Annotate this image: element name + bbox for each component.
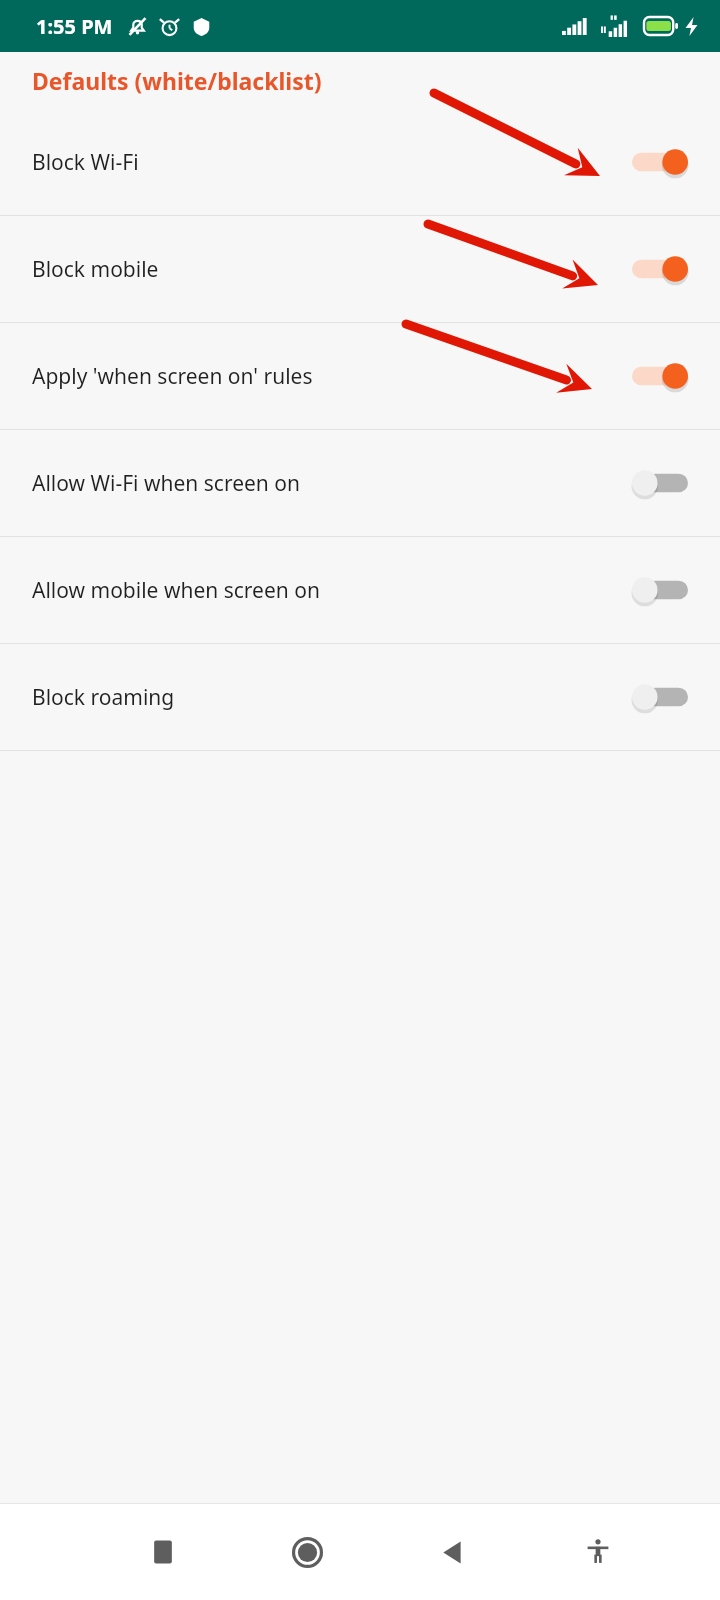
staticText: Block mobile (32, 255, 632, 284)
staticText: Block roaming (32, 683, 632, 712)
staticText: Allow mobile when screen on (32, 576, 632, 605)
button[interactable]: Allow mobile when screen on (0, 537, 720, 643)
button[interactable]: Back (380, 1504, 525, 1600)
button[interactable]: Recent apps (90, 1504, 235, 1600)
button[interactable]: Home (235, 1504, 380, 1600)
staticText: Block Wi-Fi (32, 148, 632, 177)
button[interactable]: Block Wi-Fi (0, 109, 720, 215)
button[interactable]: On (632, 253, 688, 285)
button[interactable]: On (632, 360, 688, 392)
button[interactable]: Off (632, 574, 688, 606)
button[interactable]: Block roaming (0, 644, 720, 750)
button[interactable]: Accessibility (525, 1504, 670, 1600)
button[interactable]: Off (632, 467, 688, 499)
button[interactable]: Block mobile (0, 216, 720, 322)
staticText: 1:55 PM (36, 13, 113, 40)
button[interactable]: Allow Wi-Fi when screen on (0, 430, 720, 536)
staticText: Apply 'when screen on' rules (32, 362, 632, 391)
staticText: Allow Wi-Fi when screen on (32, 469, 632, 498)
button[interactable]: Off (632, 681, 688, 713)
button[interactable]: Apply 'when screen on' rules (0, 323, 720, 429)
staticText: Defaults (white/blacklist) (32, 65, 322, 96)
button[interactable]: On (632, 146, 688, 178)
